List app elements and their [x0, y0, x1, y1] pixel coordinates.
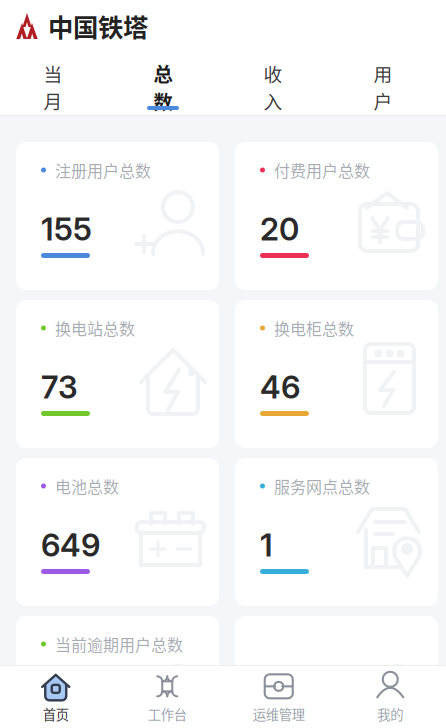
button[interactable]: [235, 616, 438, 728]
staticText: 1: [260, 526, 273, 564]
button[interactable]: 工作台: [111, 666, 223, 728]
staticText: 73: [41, 368, 78, 406]
button[interactable]: 当月: [37, 52, 69, 115]
staticText: 649: [41, 526, 100, 564]
staticText: 付费用户总数: [274, 158, 370, 182]
button[interactable]: 付费用户总数: [235, 142, 438, 290]
button[interactable]: 注册用户总数: [16, 142, 219, 290]
staticText: 运维管理: [253, 704, 305, 724]
staticText: 155: [41, 210, 92, 248]
staticText: 收入: [263, 60, 282, 114]
staticText: 换电站总数: [55, 316, 135, 340]
staticText: 46: [260, 368, 300, 406]
staticText: 用户: [373, 60, 392, 114]
staticText: 当前逾期用户总数: [55, 632, 183, 656]
staticText: 服务网点总数: [274, 474, 370, 498]
staticText: 首页: [43, 704, 69, 724]
button[interactable]: 首页: [0, 666, 111, 728]
staticText: 20: [260, 210, 299, 248]
staticText: 换电柜总数: [274, 316, 354, 340]
button[interactable]: 用户: [367, 52, 399, 115]
staticText: 注册用户总数: [55, 158, 151, 182]
staticText: 0: [41, 684, 61, 722]
staticText: 电池总数: [55, 474, 119, 498]
staticText: 当月: [43, 60, 62, 114]
button[interactable]: 电池总数: [16, 458, 219, 606]
button[interactable]: 运维管理: [223, 666, 334, 728]
button[interactable]: 当前逾期用户总数: [16, 616, 219, 728]
button[interactable]: 总数: [147, 52, 179, 115]
button[interactable]: 换电柜总数: [235, 300, 438, 448]
staticText: 总数: [153, 59, 172, 115]
staticText: 我的: [377, 704, 403, 724]
button[interactable]: 收入: [257, 52, 289, 115]
staticText: 中国铁塔: [48, 8, 148, 44]
button[interactable]: 换电站总数: [16, 300, 219, 448]
button[interactable]: 服务网点总数: [235, 458, 438, 606]
staticText: 工作台: [148, 704, 187, 724]
button[interactable]: 我的: [334, 666, 446, 728]
